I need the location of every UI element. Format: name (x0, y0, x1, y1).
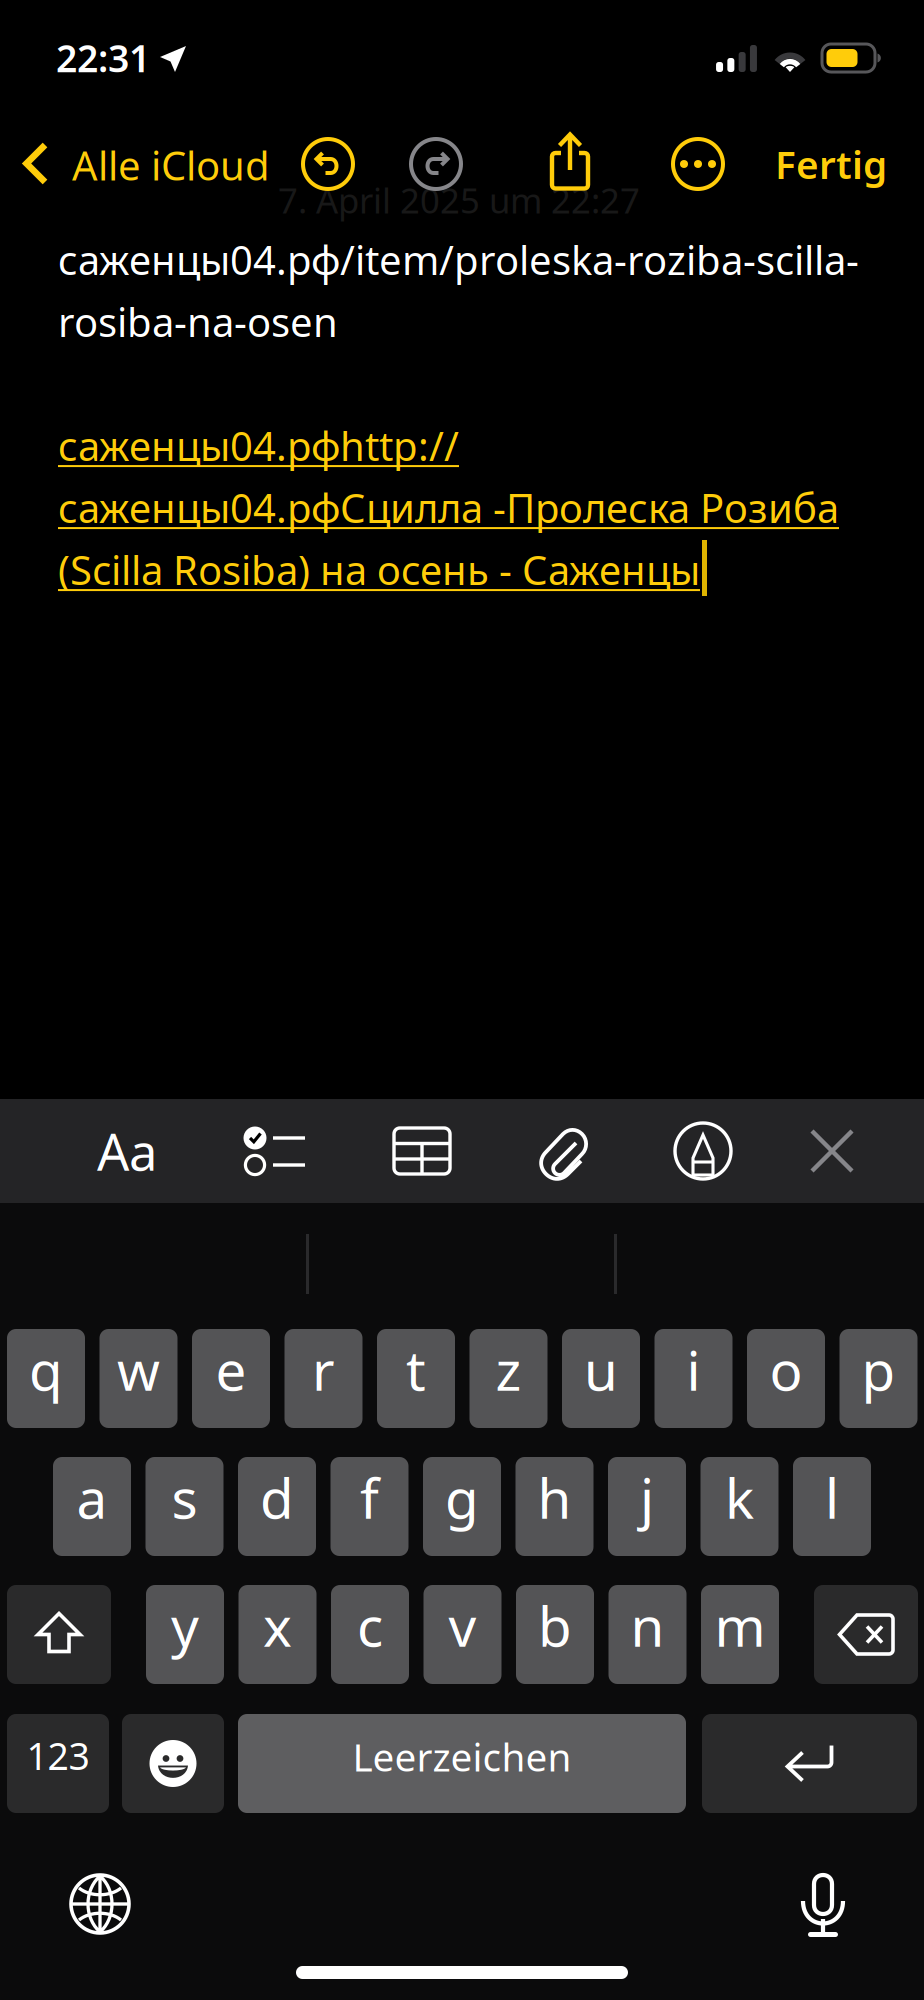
button[interactable]: Checklist (203, 1099, 347, 1203)
staticText: (Scilla Rosiba) на осень - Саженцы (58, 543, 700, 596)
button[interactable]: Dictation (775, 1866, 871, 1942)
button[interactable]: Emoji (122, 1714, 224, 1813)
button[interactable]: f (330, 1457, 408, 1556)
staticText: o (769, 1333, 802, 1406)
button[interactable]: Table (350, 1099, 494, 1203)
staticText: z (495, 1333, 521, 1406)
staticText: t (406, 1333, 426, 1406)
staticText: Leerzeichen (352, 1731, 571, 1782)
staticText: m (714, 1589, 765, 1662)
staticText: 7. April 2025 um 22:27 (278, 177, 640, 223)
staticText: x (263, 1589, 292, 1662)
button[interactable]: q (7, 1329, 85, 1428)
staticText: 22:31 (56, 33, 150, 83)
staticText: Alle iCloud (72, 138, 270, 191)
button[interactable]: p (839, 1329, 917, 1428)
button[interactable]: j (608, 1457, 686, 1556)
staticText: саженцы04.рфСцилла -Пролеска Розиба (58, 481, 839, 534)
button[interactable]: c (331, 1585, 409, 1684)
staticText: q (29, 1333, 63, 1406)
staticText: саженцы04.рфhttp:// (58, 419, 459, 472)
button[interactable]: r (284, 1329, 362, 1428)
button[interactable]: x (238, 1585, 316, 1684)
staticText: g (445, 1461, 479, 1534)
button[interactable]: Fertig (760, 131, 902, 197)
staticText: Aa (97, 1117, 157, 1185)
button[interactable]: z (469, 1329, 547, 1428)
button[interactable]: n (608, 1585, 686, 1684)
staticText: p (861, 1333, 895, 1406)
button[interactable]: Attach file (491, 1099, 635, 1203)
button[interactable]: w (99, 1329, 177, 1428)
staticText: u (584, 1333, 618, 1406)
button[interactable]: More (671, 137, 725, 191)
button[interactable]: s (145, 1457, 223, 1556)
staticText: Fertig (775, 138, 887, 190)
button[interactable]: v (423, 1585, 501, 1684)
staticText: j (640, 1461, 654, 1534)
staticText: rosiba-na-osen (58, 295, 338, 348)
button[interactable]: t (377, 1329, 455, 1428)
button[interactable]: k (700, 1457, 778, 1556)
button[interactable]: Leerzeichen (238, 1714, 686, 1813)
button[interactable]: o (747, 1329, 825, 1428)
staticText: y (171, 1589, 199, 1662)
button[interactable]: i (654, 1329, 732, 1428)
button[interactable]: h (515, 1457, 593, 1556)
staticText: r (312, 1333, 335, 1406)
button[interactable]: Share (546, 131, 594, 191)
button[interactable]: Redo (409, 137, 463, 191)
button[interactable]: 123 (7, 1714, 109, 1813)
staticText: w (117, 1333, 160, 1406)
button[interactable]: Shift (7, 1585, 111, 1684)
button[interactable]: Format (55, 1099, 199, 1203)
button[interactable]: Undo (301, 137, 355, 191)
staticText: c (357, 1589, 383, 1662)
button[interactable]: Delete (814, 1585, 918, 1684)
staticText: a (76, 1461, 107, 1534)
button[interactable]: u (562, 1329, 640, 1428)
staticText: b (538, 1589, 572, 1662)
button[interactable]: Return (702, 1714, 917, 1813)
button[interactable]: l (793, 1457, 871, 1556)
button[interactable]: Alle iCloud (21, 131, 284, 199)
staticText: i (686, 1333, 700, 1406)
staticText: k (725, 1461, 754, 1534)
button[interactable]: m (701, 1585, 779, 1684)
staticText: d (260, 1461, 294, 1534)
button[interactable]: Next keyboard (52, 1866, 148, 1942)
staticText: f (360, 1461, 379, 1534)
staticText: s (171, 1461, 197, 1534)
staticText: v (448, 1589, 476, 1662)
staticText: 123 (26, 1731, 89, 1780)
button[interactable]: Markup (631, 1099, 775, 1203)
button[interactable]: b (516, 1585, 594, 1684)
button[interactable]: g (423, 1457, 501, 1556)
button[interactable]: a (53, 1457, 131, 1556)
button[interactable]: Hide keyboard (760, 1099, 904, 1203)
staticText: n (630, 1589, 664, 1662)
button[interactable]: y (146, 1585, 224, 1684)
staticText: саженцы04.рф/item/proleska-roziba-scilla… (58, 233, 859, 286)
staticText: l (825, 1461, 839, 1534)
staticText: e (215, 1333, 246, 1406)
button[interactable]: e (192, 1329, 270, 1428)
staticText: h (537, 1461, 571, 1534)
button[interactable]: d (238, 1457, 316, 1556)
